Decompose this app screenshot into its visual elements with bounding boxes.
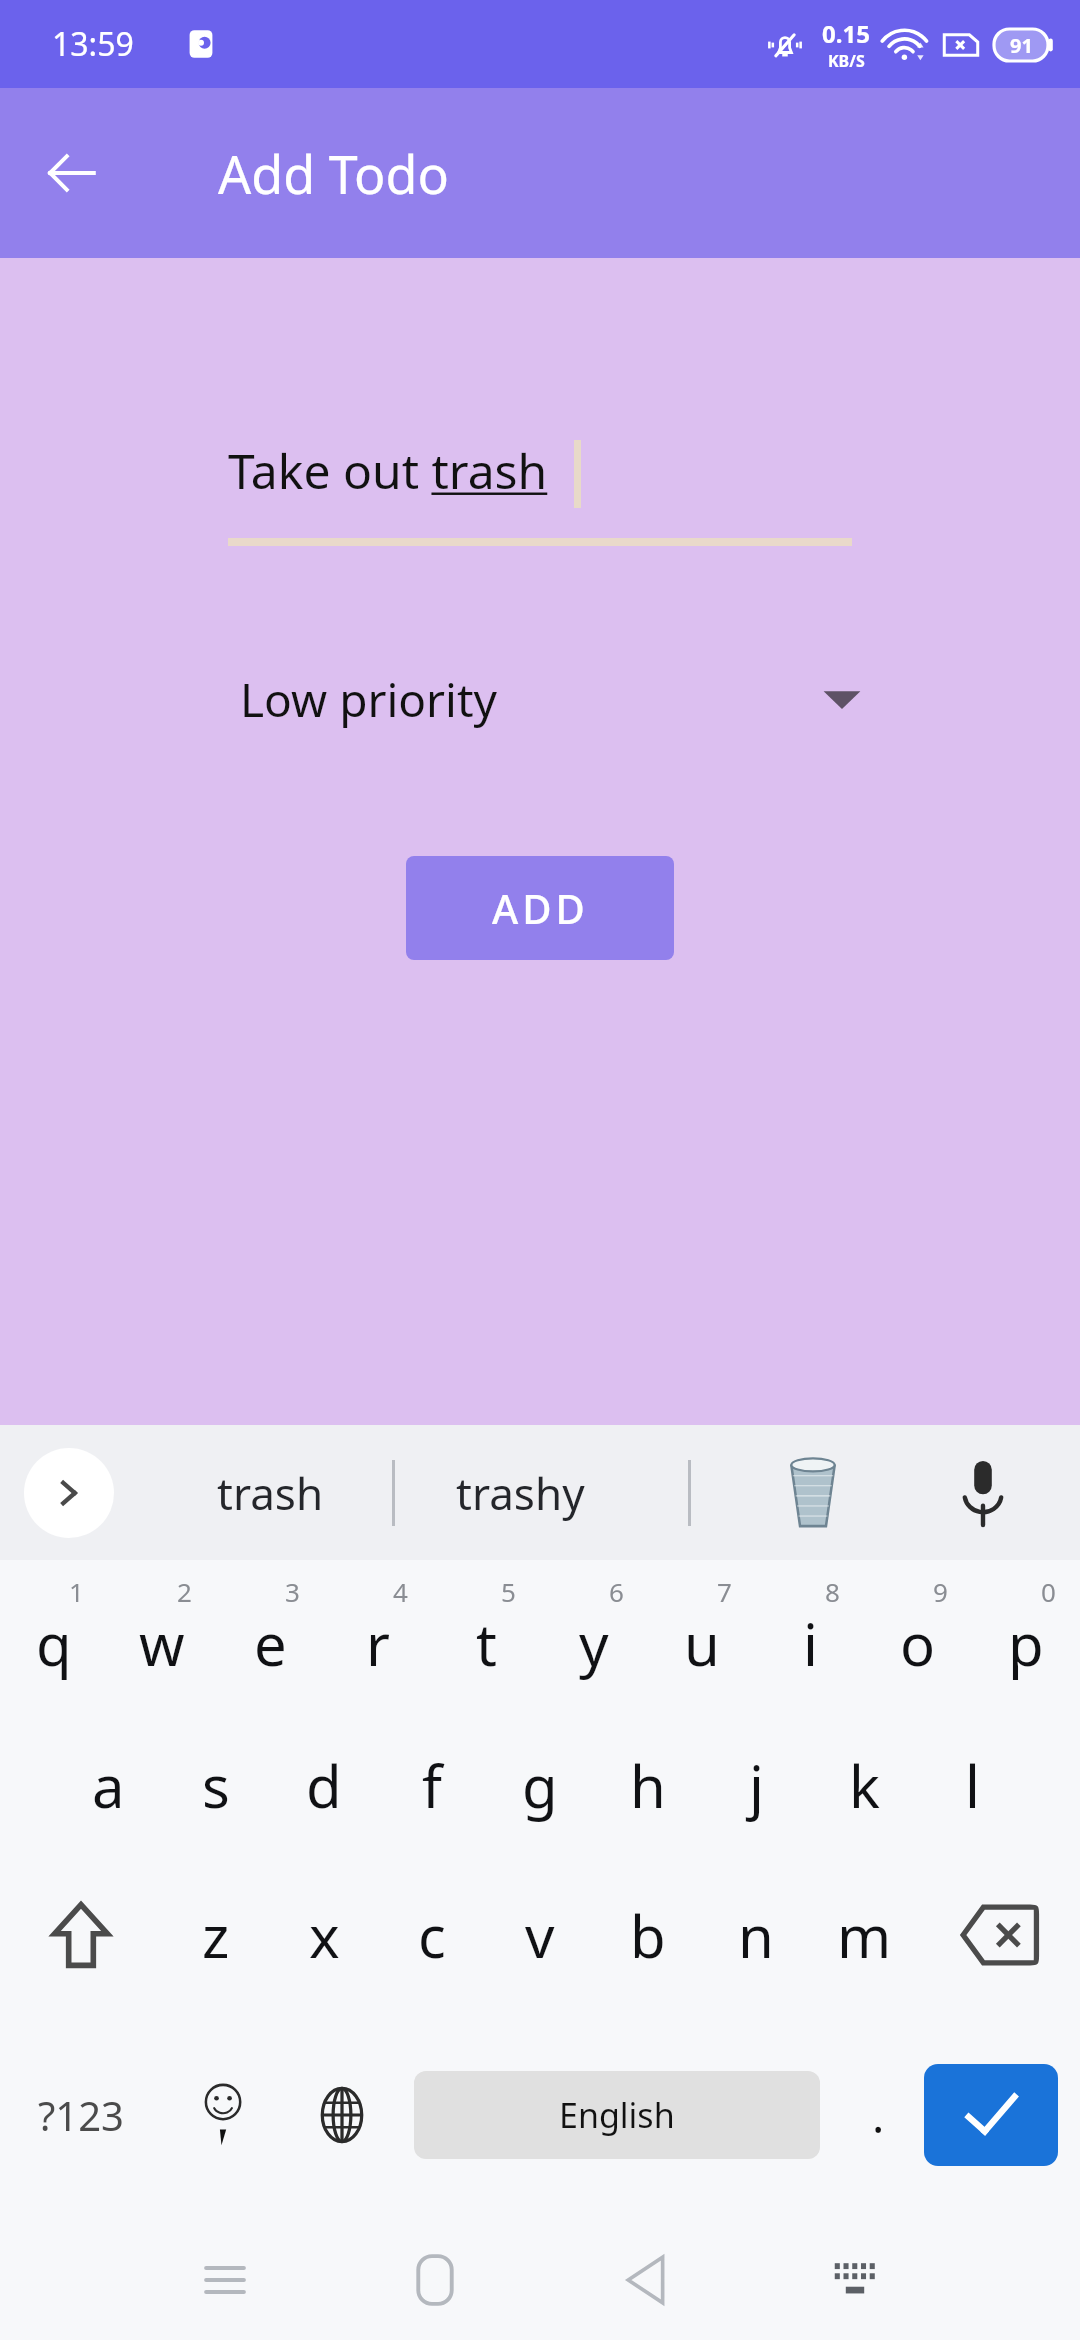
- staticText: f: [422, 1746, 442, 1825]
- button[interactable]: Voice input: [918, 1425, 1048, 1560]
- button[interactable]: 4: [324, 1560, 432, 1710]
- button[interactable]: Back: [540, 2220, 750, 2340]
- button[interactable]: l: [918, 1710, 1026, 1860]
- button[interactable]: Back: [24, 125, 120, 221]
- button[interactable]: More suggestions: [24, 1448, 114, 1538]
- staticText: h: [630, 1746, 666, 1825]
- staticText: j: [749, 1746, 764, 1825]
- button[interactable]: 1: [0, 1560, 108, 1710]
- button[interactable]: Shift: [0, 1860, 162, 2010]
- button[interactable]: ADD: [406, 856, 674, 960]
- button[interactable]: Low priority: [240, 656, 862, 742]
- staticText: l: [965, 1746, 980, 1825]
- button[interactable]: 6: [540, 1560, 648, 1710]
- staticText: d: [306, 1746, 342, 1825]
- staticText: v: [525, 1896, 555, 1975]
- button[interactable]: x: [270, 1860, 378, 2010]
- button[interactable]: trashy: [400, 1425, 640, 1560]
- staticText: 7: [717, 1574, 732, 1609]
- button[interactable]: Emoji: [162, 2010, 282, 2220]
- staticText: u: [684, 1604, 720, 1683]
- button[interactable]: English: [414, 2071, 820, 2159]
- staticText: 1: [69, 1574, 84, 1609]
- button[interactable]: 7: [648, 1560, 756, 1710]
- staticText: English: [559, 2092, 675, 2138]
- staticText: trash: [217, 1463, 324, 1523]
- button[interactable]: 5: [432, 1560, 540, 1710]
- staticText: a: [92, 1746, 125, 1825]
- button[interactable]: f: [378, 1710, 486, 1860]
- staticText: KB/S: [828, 50, 865, 72]
- staticText: 13:59: [52, 22, 134, 66]
- staticText: 0: [1041, 1574, 1056, 1609]
- staticText: n: [738, 1896, 774, 1975]
- button[interactable]: .: [832, 2010, 924, 2220]
- staticText: 9: [933, 1574, 948, 1609]
- staticText: z: [202, 1896, 230, 1975]
- button[interactable]: g: [486, 1710, 594, 1860]
- button[interactable]: Change language: [282, 2010, 402, 2220]
- button[interactable]: z: [162, 1860, 270, 2010]
- button[interactable]: Home: [330, 2220, 540, 2340]
- staticText: r: [366, 1604, 390, 1683]
- staticText: o: [900, 1604, 936, 1683]
- button[interactable]: s: [162, 1710, 270, 1860]
- button[interactable]: v: [486, 1860, 594, 2010]
- staticText: k: [849, 1746, 880, 1825]
- staticText: y: [579, 1604, 609, 1683]
- button[interactable]: 9: [864, 1560, 972, 1710]
- staticText: e: [254, 1604, 287, 1683]
- button[interactable]: h: [594, 1710, 702, 1860]
- staticText: Take out trash: [228, 438, 548, 503]
- staticText: ?123: [38, 2088, 124, 2142]
- button[interactable]: Backspace: [918, 1860, 1080, 2010]
- button[interactable]: k: [810, 1710, 918, 1860]
- staticText: t: [476, 1604, 497, 1683]
- staticText: 0.15: [822, 17, 870, 50]
- button[interactable]: Take out trash: [228, 438, 852, 538]
- button[interactable]: j: [702, 1710, 810, 1860]
- button[interactable]: 3: [216, 1560, 324, 1710]
- staticText: g: [522, 1746, 558, 1825]
- staticText: Add Todo: [218, 138, 449, 209]
- staticText: 5: [501, 1574, 516, 1609]
- button[interactable]: c: [378, 1860, 486, 2010]
- staticText: 3: [285, 1574, 300, 1609]
- button[interactable]: Recents: [120, 2220, 330, 2340]
- staticText: c: [418, 1896, 446, 1975]
- button[interactable]: 2: [108, 1560, 216, 1710]
- staticText: x: [309, 1896, 340, 1975]
- staticText: b: [630, 1896, 666, 1975]
- staticText: w: [139, 1604, 185, 1683]
- button[interactable]: 0: [972, 1560, 1080, 1710]
- staticText: 91: [1010, 32, 1033, 59]
- button[interactable]: 8: [756, 1560, 864, 1710]
- staticText: i: [803, 1604, 818, 1683]
- staticText: 6: [609, 1574, 624, 1609]
- staticText: 4: [393, 1574, 408, 1609]
- button[interactable]: d: [270, 1710, 378, 1860]
- staticText: trashy: [456, 1463, 585, 1523]
- button[interactable]: trash: [150, 1425, 390, 1560]
- staticText: ADD: [492, 881, 589, 935]
- staticText: 2: [177, 1574, 192, 1609]
- button[interactable]: Hide keyboard: [750, 2220, 960, 2340]
- staticText: q: [36, 1604, 72, 1683]
- button[interactable]: n: [702, 1860, 810, 2010]
- button[interactable]: ?123: [0, 2010, 162, 2220]
- button[interactable]: Wastebasket emoji: [748, 1425, 878, 1560]
- staticText: .: [872, 2084, 885, 2147]
- button[interactable]: b: [594, 1860, 702, 2010]
- button[interactable]: Done: [924, 2064, 1058, 2166]
- staticText: Low priority: [240, 668, 498, 731]
- button[interactable]: a: [54, 1710, 162, 1860]
- staticText: s: [202, 1746, 230, 1825]
- staticText: p: [1008, 1604, 1044, 1683]
- staticText: 8: [825, 1574, 840, 1609]
- staticText: m: [837, 1896, 892, 1975]
- button[interactable]: m: [810, 1860, 918, 2010]
